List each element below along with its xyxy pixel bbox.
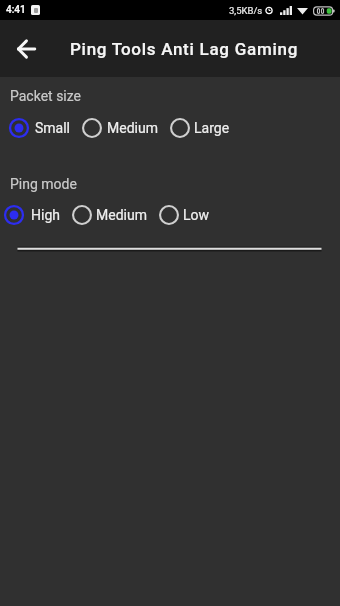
staticText: Medium — [107, 120, 158, 136]
button[interactable]: Medium — [82, 118, 158, 138]
button[interactable]: Small — [9, 118, 71, 138]
staticText: Ping Tools Anti Lag Gaming — [70, 39, 299, 59]
staticText: Small — [35, 120, 71, 136]
staticText: 3,5KB/s — [229, 5, 263, 16]
button[interactable]: Low — [159, 205, 210, 225]
staticText: Medium — [96, 207, 147, 223]
staticText: 4:41 — [6, 4, 26, 16]
staticText: Ping mode — [10, 176, 77, 192]
staticText: Low — [183, 207, 210, 223]
button[interactable]: Back — [8, 31, 44, 67]
staticText: High — [31, 207, 60, 223]
button[interactable]: Medium — [72, 205, 147, 225]
button[interactable]: Large — [170, 118, 230, 138]
button[interactable]: High — [4, 205, 60, 225]
staticText: Packet size — [10, 88, 82, 104]
staticText: Large — [194, 120, 230, 136]
